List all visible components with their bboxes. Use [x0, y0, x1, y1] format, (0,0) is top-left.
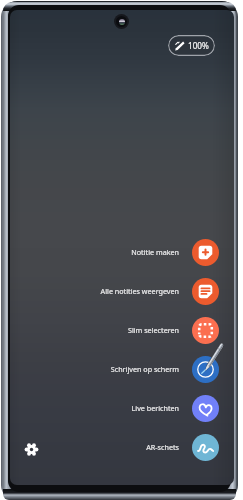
button[interactable]: Slim selecteren: [10, 313, 234, 347]
button[interactable]: Live berichten: [10, 391, 234, 425]
staticText: Schrijven op scherm: [110, 364, 179, 374]
staticText: 100%: [188, 40, 209, 51]
staticText: Notitie maken: [131, 247, 179, 257]
button[interactable]: Instellingen: [17, 435, 46, 464]
button[interactable]: Alle notities weergeven: [10, 274, 234, 308]
staticText: Alle notities weergeven: [100, 286, 179, 296]
staticText: Slim selecteren: [127, 325, 179, 335]
button[interactable]: Schrijven op scherm: [10, 352, 234, 386]
staticText: AR-schets: [146, 442, 179, 452]
button[interactable]: Notitie maken: [10, 235, 234, 269]
button[interactable]: AR-schets: [10, 430, 234, 464]
staticText: Live berichten: [131, 403, 179, 413]
button[interactable]: S Pen batterij 100%: [168, 35, 215, 56]
